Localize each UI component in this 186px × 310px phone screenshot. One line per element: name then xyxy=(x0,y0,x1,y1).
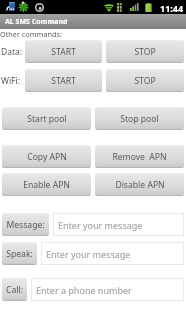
button[interactable]: Enter your message xyxy=(41,242,184,265)
button[interactable]: Speak: xyxy=(2,242,37,265)
button[interactable]: Copy APN xyxy=(2,145,91,168)
staticText: Enter your message xyxy=(46,248,131,260)
button[interactable]: STOP xyxy=(106,69,184,92)
staticText: Remove APN xyxy=(112,151,167,163)
button[interactable]: Disable APN xyxy=(95,173,184,196)
staticText: Enable APN xyxy=(23,179,70,191)
button[interactable]: Start pool xyxy=(2,107,91,130)
staticText: AL SMS Command xyxy=(5,17,68,27)
button[interactable]: START xyxy=(25,69,102,92)
staticText: Copy APN xyxy=(27,151,67,163)
button[interactable]: Stop pool xyxy=(95,107,184,130)
staticText: STOP xyxy=(134,46,156,58)
button[interactable]: STOP xyxy=(106,40,184,63)
staticText: Message: xyxy=(6,219,45,231)
staticText: Stop pool xyxy=(120,113,159,125)
button[interactable]: Remove APN xyxy=(95,145,184,168)
button[interactable]: Enter a phone number xyxy=(31,278,184,301)
button[interactable]: START xyxy=(25,40,102,63)
staticText: START xyxy=(51,75,76,87)
button[interactable]: Enable APN xyxy=(2,173,91,196)
staticText: Disable APN xyxy=(115,179,165,191)
staticText: 11:44 xyxy=(160,2,184,14)
staticText: Other commands: xyxy=(0,29,62,39)
staticText: Call: xyxy=(6,284,23,296)
staticText: Start pool xyxy=(27,113,67,125)
staticText: Data: xyxy=(1,46,24,58)
staticText: STOP xyxy=(134,75,156,87)
button[interactable]: Enter your message xyxy=(53,213,184,236)
staticText: Enter a phone number xyxy=(36,284,132,296)
staticText: WiFi: xyxy=(1,75,24,87)
staticText: Enter your message xyxy=(58,219,143,231)
button[interactable]: Message: xyxy=(2,213,49,236)
staticText: START xyxy=(51,46,76,58)
button[interactable]: Call: xyxy=(2,278,27,301)
staticText: Speak: xyxy=(6,248,33,260)
